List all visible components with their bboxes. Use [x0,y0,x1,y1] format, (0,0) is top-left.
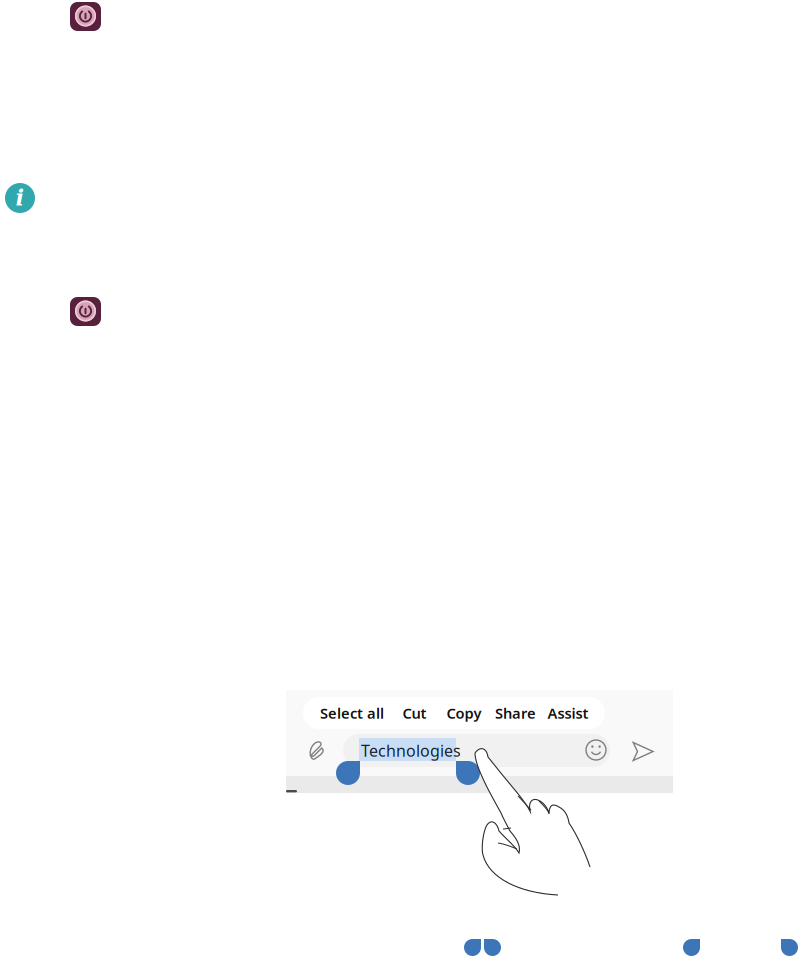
button[interactable]: Select all [312,697,392,729]
staticText: Share [495,703,536,723]
button[interactable]: Share [491,697,540,729]
staticText: Select all [320,703,384,723]
staticText: Assist [547,703,588,723]
button[interactable]: Cut [392,697,437,729]
button[interactable]: Assist [540,697,596,729]
staticText: i [15,184,24,211]
staticText: Copy [446,703,481,723]
staticText: Cut [402,703,426,723]
staticText: Technologies [361,740,461,761]
button[interactable]: Copy [437,697,491,729]
